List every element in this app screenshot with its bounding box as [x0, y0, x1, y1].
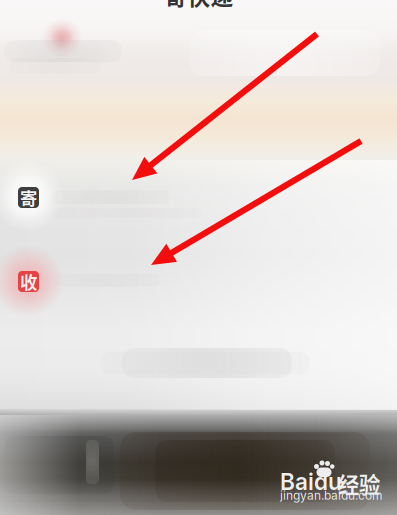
staticText: 收: [20, 269, 37, 294]
staticText: 寄快递: [164, 0, 233, 11]
button[interactable]: 收件: [18, 271, 39, 292]
staticText: jingyan.baidu.com: [280, 488, 383, 502]
staticText: 经验: [338, 468, 380, 499]
staticText: Baidu: [280, 468, 342, 495]
button[interactable]: 寄快递: [139, 0, 259, 7]
staticText: 寄: [20, 185, 37, 210]
button[interactable]: 寄件: [18, 187, 39, 208]
